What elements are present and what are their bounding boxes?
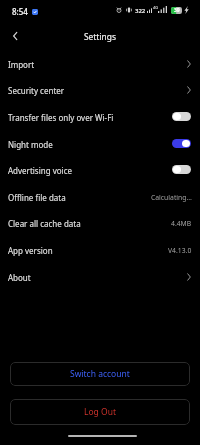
- button[interactable]: Transfer files only over Wi-Fi: [0, 104, 200, 131]
- staticText: V4.13.0: [168, 246, 192, 255]
- staticText: 4.4MB: [171, 219, 192, 228]
- staticText: Settings: [84, 31, 116, 42]
- button[interactable]: Import: [0, 51, 200, 78]
- staticText: Calculating…: [151, 193, 192, 202]
- button[interactable]: App version: [0, 237, 200, 264]
- staticText: 4G: [153, 5, 159, 10]
- staticText: Advertising voice: [8, 165, 73, 176]
- button[interactable]: Switch account: [10, 362, 190, 386]
- button[interactable]: Clear all cache data: [0, 210, 200, 237]
- button[interactable]: About: [0, 264, 200, 291]
- staticText: Night mode: [8, 139, 53, 150]
- staticText: App version: [8, 245, 53, 256]
- staticText: Transfer files only over Wi-Fi: [8, 112, 114, 123]
- button[interactable]: Security center: [0, 77, 200, 104]
- staticText: Security center: [8, 85, 65, 96]
- button[interactable]: On: [172, 139, 191, 148]
- staticText: Log Out: [84, 406, 116, 418]
- button[interactable]: Off: [172, 165, 191, 174]
- staticText: 39: [174, 7, 180, 14]
- button[interactable]: Back: [3, 24, 27, 48]
- staticText: 322: [135, 7, 146, 15]
- button[interactable]: Off: [172, 112, 191, 121]
- staticText: Import: [8, 59, 35, 70]
- button[interactable]: Night mode: [0, 131, 200, 158]
- button[interactable]: Log Out: [10, 399, 190, 425]
- button[interactable]: Advertising voice: [0, 157, 200, 184]
- staticText: Clear all cache data: [8, 218, 81, 229]
- staticText: 8:54: [12, 6, 28, 17]
- staticText: Switch account: [70, 368, 130, 380]
- button[interactable]: Offline file data: [0, 184, 200, 211]
- staticText: About: [8, 272, 31, 283]
- staticText: Offline file data: [8, 192, 66, 203]
